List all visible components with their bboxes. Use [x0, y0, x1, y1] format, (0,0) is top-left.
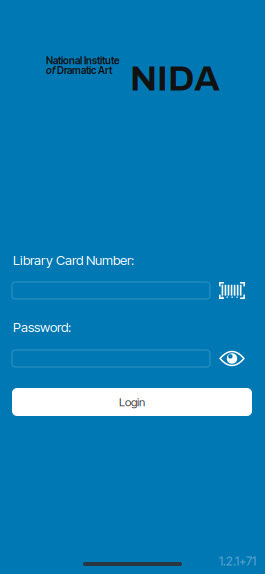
button[interactable]: Show password	[219, 350, 245, 366]
staticText: National Institute	[46, 54, 120, 67]
button[interactable]: Scan library card barcode	[219, 282, 245, 299]
staticText: of Dramatic Art	[46, 64, 112, 76]
staticText: Login	[119, 395, 145, 409]
staticText: Library Card Number:	[13, 252, 134, 268]
staticText: 1.2.1+71	[219, 554, 256, 568]
button[interactable]: Login	[12, 388, 252, 416]
staticText: Password:	[13, 319, 71, 335]
staticText: NIDA	[130, 60, 220, 98]
